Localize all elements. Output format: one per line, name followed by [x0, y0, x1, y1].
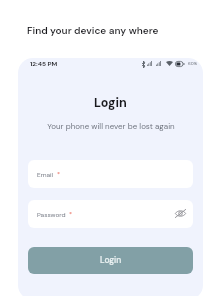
button[interactable]: Show password	[174, 207, 187, 220]
staticText: *	[57, 170, 61, 178]
staticText: Login	[94, 95, 127, 111]
staticText: Email	[37, 171, 54, 179]
staticText: 60%	[188, 61, 198, 67]
staticText: Your phone will never be lost again	[47, 121, 175, 131]
staticText: *	[69, 210, 73, 218]
button[interactable]: Email	[28, 160, 193, 188]
button[interactable]: Password	[28, 200, 193, 228]
staticText: Password	[37, 211, 66, 219]
staticText: Find your device any where	[27, 24, 159, 37]
button[interactable]: Login	[28, 247, 193, 274]
staticText: 12:45 PM	[30, 60, 58, 68]
staticText: Login	[100, 255, 122, 266]
